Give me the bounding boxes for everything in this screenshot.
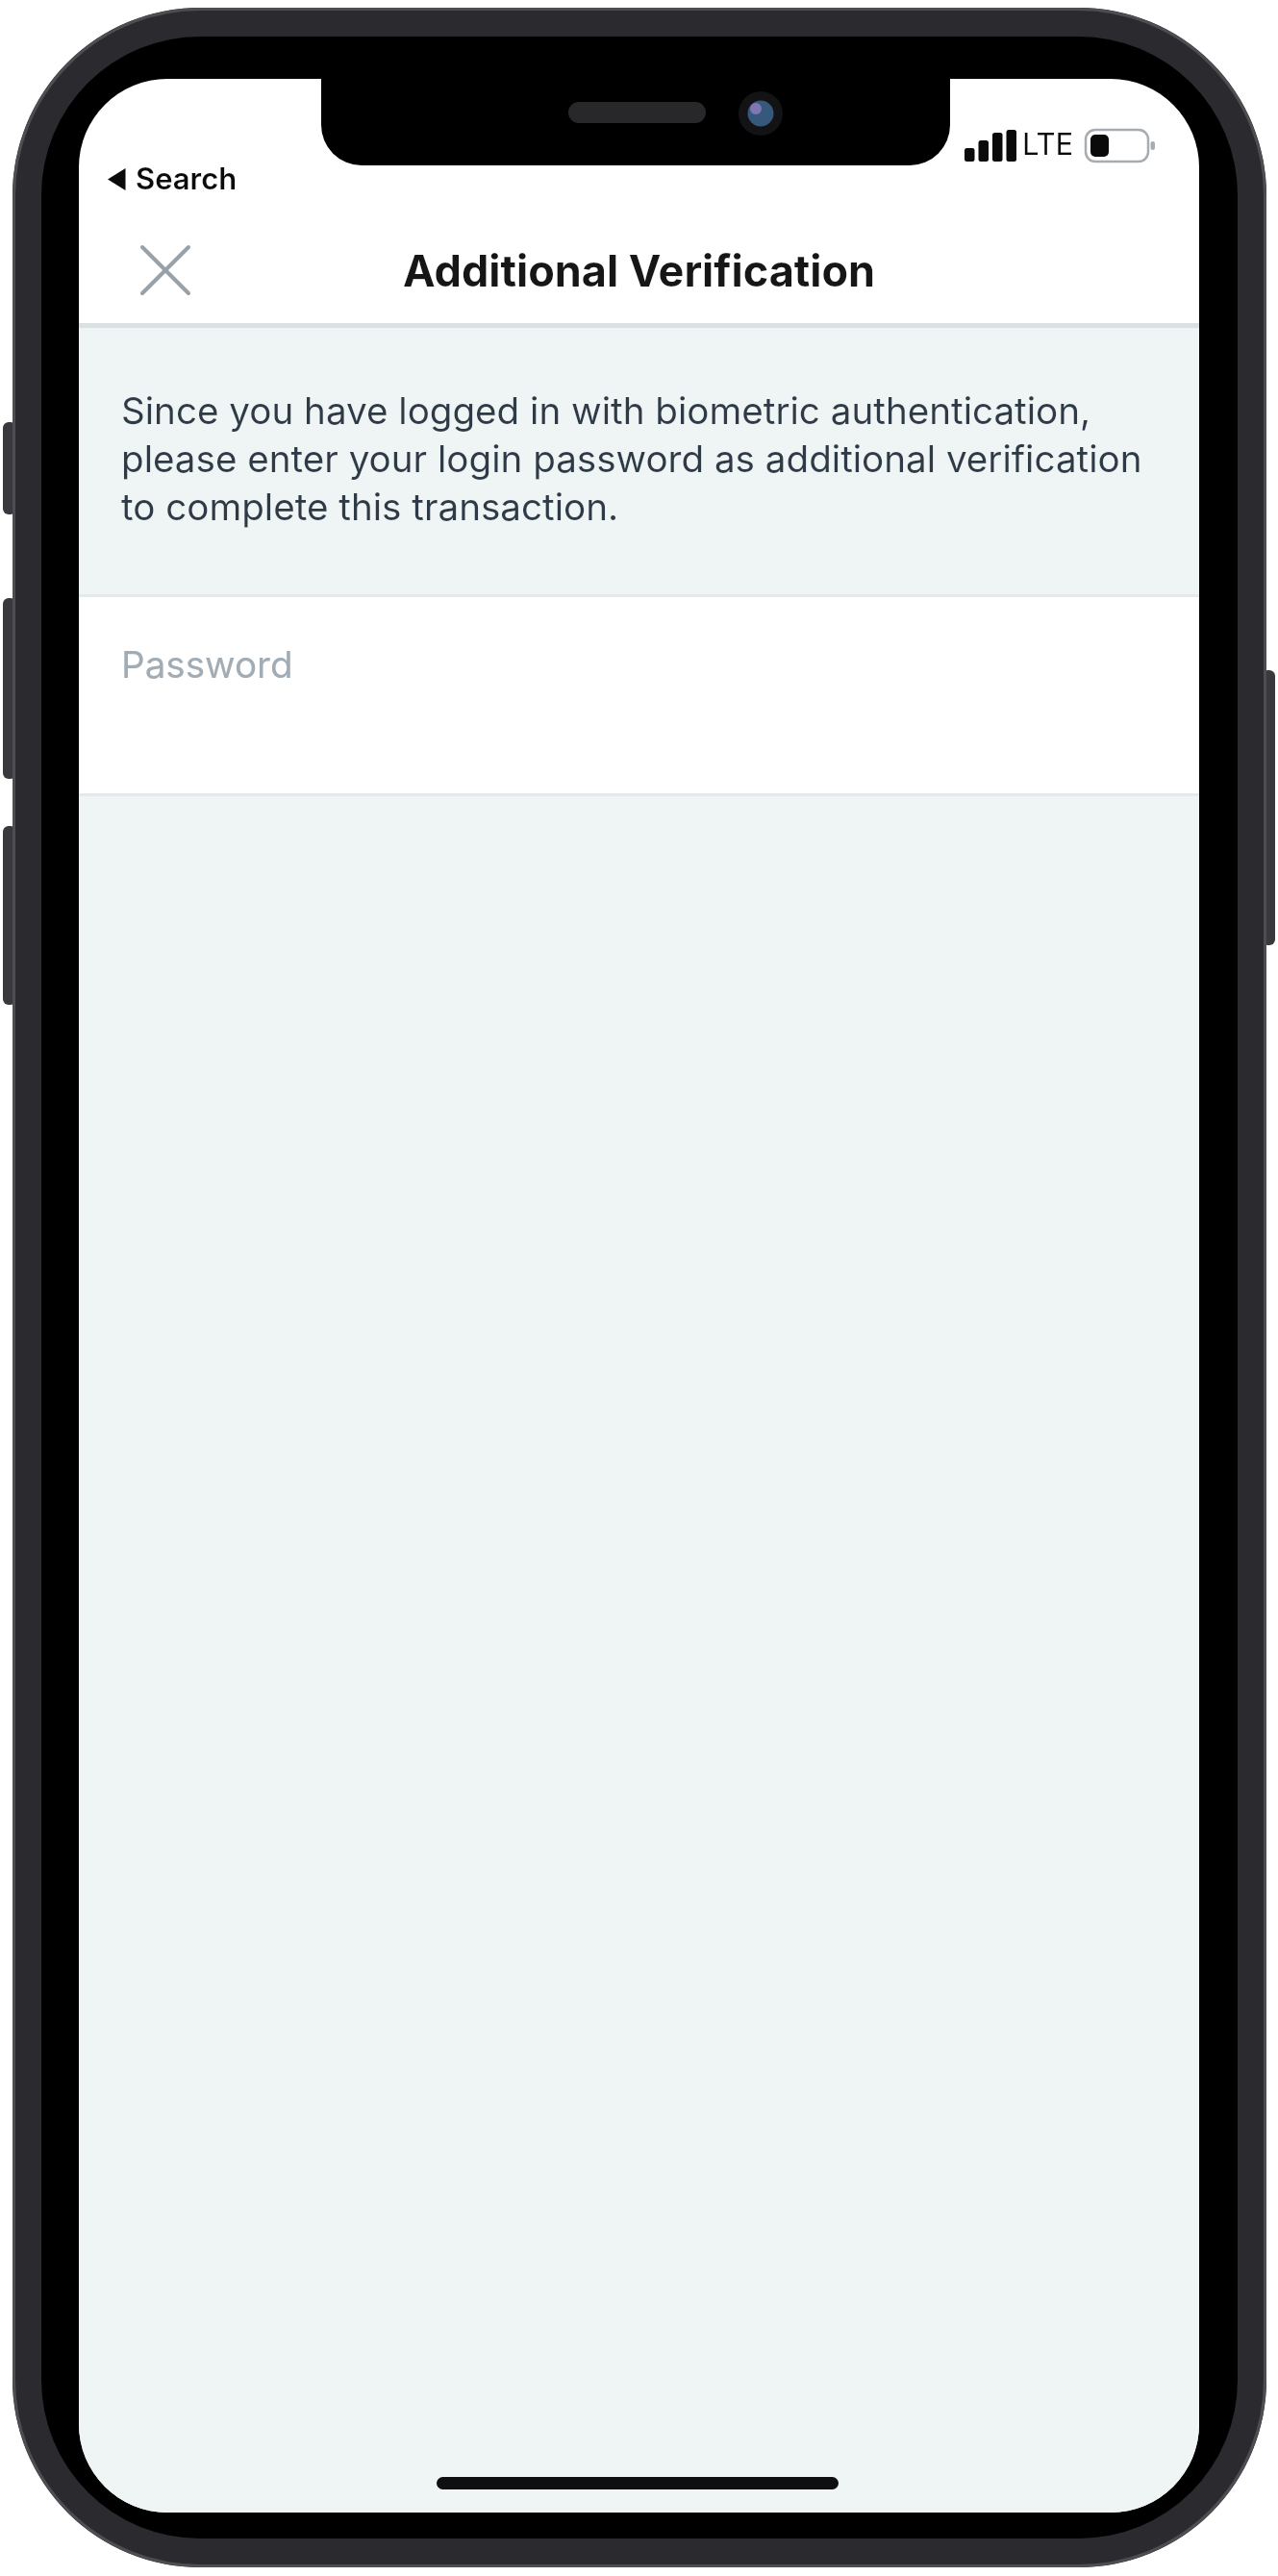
- staticText: Password: [121, 642, 293, 688]
- button[interactable]: Search: [94, 154, 258, 202]
- button[interactable]: Password: [79, 597, 1199, 793]
- button[interactable]: [131, 236, 200, 305]
- staticText: please enter your login password as addi…: [121, 437, 1142, 482]
- staticText: Additional Verification: [403, 244, 876, 296]
- staticText: Search: [136, 161, 238, 197]
- staticText: LTE: [1022, 126, 1074, 163]
- staticText: Since you have logged in with biometric …: [121, 388, 1091, 434]
- staticText: to complete this transaction.: [121, 485, 619, 530]
